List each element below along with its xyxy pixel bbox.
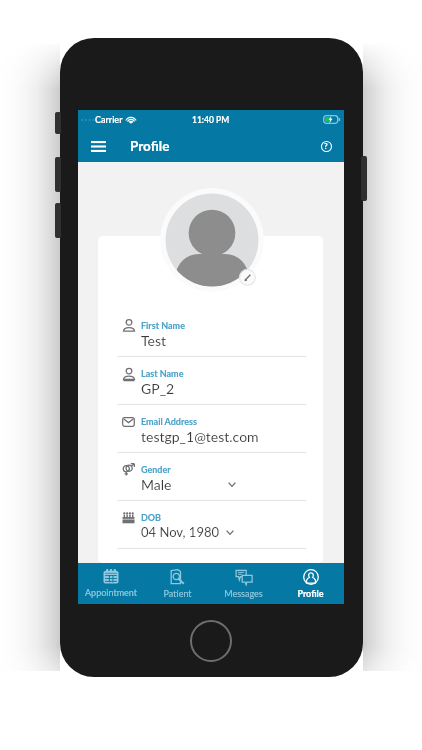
button[interactable]: Profile (277, 563, 344, 604)
button[interactable]: Appointment (78, 563, 144, 604)
button[interactable]: Gender (98, 453, 323, 500)
button[interactable]: DOB (98, 501, 323, 548)
button[interactable]: Menu (86, 134, 110, 158)
button[interactable]: Help (316, 136, 336, 156)
staticText: DOB (141, 512, 162, 523)
staticText: Messages (224, 588, 263, 599)
staticText: Gender (141, 464, 171, 475)
staticText: Patient (163, 588, 192, 599)
button[interactable]: Patient (144, 563, 210, 604)
staticText: 04 Nov, 1980 (141, 524, 220, 540)
staticText: Profile (130, 138, 170, 154)
button[interactable]: Messages (210, 563, 277, 604)
staticText: Test (141, 332, 167, 349)
staticText: Male (141, 476, 172, 493)
button[interactable]: Last Name (98, 357, 323, 404)
staticText: First Name (141, 320, 185, 331)
button[interactable]: Profile photo (160, 188, 264, 292)
staticText: testgp_1@test.com (141, 428, 259, 445)
staticText: Carrier (95, 114, 123, 125)
button[interactable]: First Name (98, 309, 323, 356)
staticText: ? (324, 141, 328, 151)
button[interactable]: Edit photo (239, 269, 256, 286)
staticText: Email Address (141, 416, 197, 427)
staticText: Last Name (141, 368, 184, 379)
button[interactable]: Email Address (98, 405, 323, 452)
staticText: 11:40 PM (192, 115, 230, 125)
staticText: Appointment (85, 587, 137, 598)
staticText: GP_2 (141, 380, 175, 397)
staticText: Profile (297, 588, 324, 599)
